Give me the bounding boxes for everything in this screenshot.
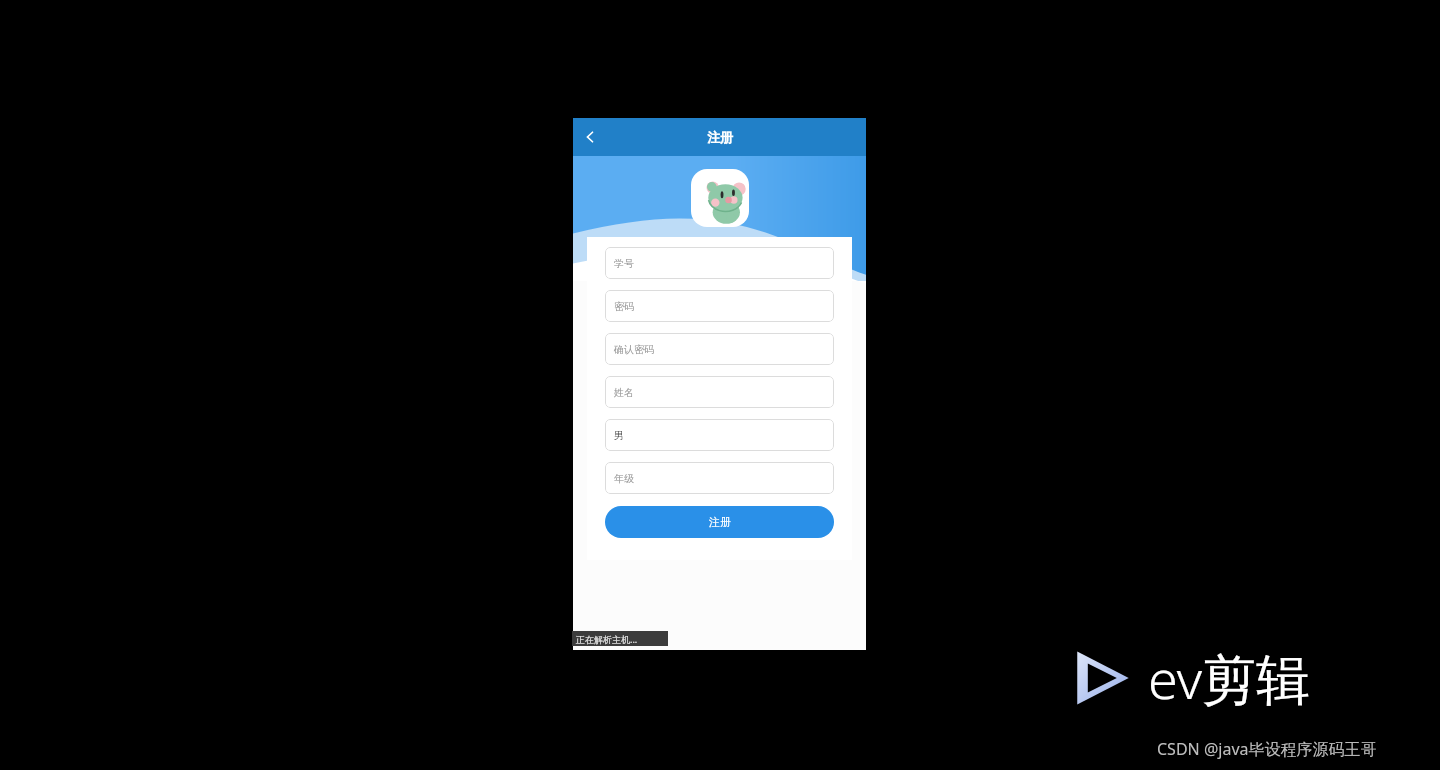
staticText: 注册 [707, 129, 733, 145]
staticText: ev剪辑 [1148, 641, 1311, 715]
staticText: 学号 [614, 257, 634, 270]
staticText: CSDN @java毕设程序源码王哥 [1157, 738, 1377, 760]
button[interactable]: 学号 [605, 247, 834, 279]
button[interactable]: 年级 [605, 462, 834, 494]
staticText: 男 [614, 429, 624, 442]
staticText: 注册 [709, 515, 731, 529]
staticText: 确认密码 [614, 343, 654, 356]
button[interactable]: 返回 [573, 120, 607, 154]
button[interactable]: 姓名 [605, 376, 834, 408]
staticText: 姓名 [614, 386, 634, 399]
button[interactable]: 确认密码 [605, 333, 834, 365]
staticText: 年级 [614, 472, 634, 485]
staticText: 密码 [614, 300, 634, 313]
button[interactable]: 男 [605, 419, 834, 451]
staticText: 正在解析主机... [576, 633, 638, 645]
button[interactable]: 头像 [691, 169, 749, 227]
button[interactable]: 密码 [605, 290, 834, 322]
button[interactable]: 注册 [605, 506, 834, 538]
